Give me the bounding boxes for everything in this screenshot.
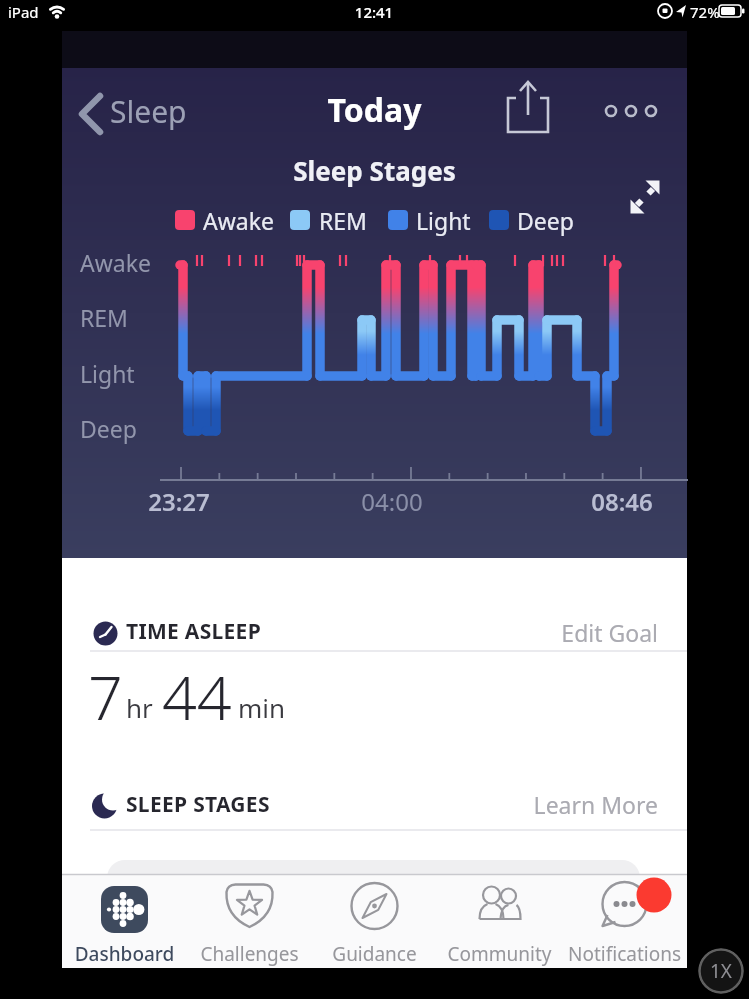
staticText: Notifications	[564, 941, 685, 971]
button[interactable]	[602, 91, 662, 131]
staticText: min	[238, 690, 286, 725]
button[interactable]	[312, 874, 437, 968]
staticText: iPad	[8, 2, 39, 22]
button[interactable]: Edit Goal	[552, 617, 658, 653]
staticText: Deep	[80, 413, 137, 444]
staticText: Deep	[517, 205, 574, 236]
staticText: Dashboard	[64, 941, 185, 971]
staticText: Challenges	[189, 941, 310, 971]
staticText: 1X	[710, 958, 733, 984]
staticText: Community	[439, 941, 560, 971]
button[interactable]	[62, 874, 187, 968]
button[interactable]	[622, 176, 668, 222]
staticText: 04:00	[347, 485, 437, 523]
staticText: 12:41	[352, 2, 396, 26]
staticText: TIME ASLEEP	[126, 617, 262, 646]
button[interactable]	[502, 76, 558, 140]
staticText: SLEEP STAGES	[126, 790, 270, 819]
button[interactable]	[562, 874, 687, 968]
staticText: Today	[62, 88, 687, 139]
staticText: 44	[162, 655, 232, 738]
staticText: 23:27	[134, 485, 224, 523]
button[interactable]	[70, 86, 210, 141]
staticText: REM	[319, 205, 367, 236]
staticText: 7	[88, 655, 123, 738]
staticText: Sleep	[110, 91, 187, 132]
button[interactable]	[437, 874, 562, 968]
staticText: Light	[80, 358, 135, 389]
staticText: Guidance	[314, 941, 435, 971]
staticText: Sleep Stages	[62, 153, 687, 194]
staticText: hr	[126, 690, 153, 725]
staticText: Awake	[203, 205, 274, 236]
button[interactable]: 1X	[698, 948, 744, 994]
button[interactable]	[187, 874, 312, 968]
staticText: Awake	[80, 247, 151, 278]
staticText: 08:46	[577, 485, 667, 523]
staticText: 72%	[690, 2, 720, 22]
staticText: Light	[416, 205, 471, 236]
staticText: REM	[80, 302, 128, 333]
button[interactable]: Learn More	[532, 789, 658, 825]
